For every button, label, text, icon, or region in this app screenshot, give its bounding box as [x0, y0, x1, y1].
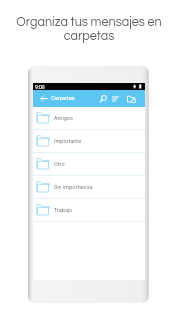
staticText: Trabajo: [54, 207, 73, 213]
staticText: Importante: [54, 138, 82, 144]
button[interactable]: Sort: [109, 90, 122, 107]
staticText: Sin importancia: [54, 184, 93, 190]
button[interactable]: Otro: [33, 153, 145, 176]
button[interactable]: Manage folders: [124, 90, 139, 107]
staticText: Amigos: [54, 115, 73, 121]
staticText: 9:00: [35, 84, 45, 90]
button[interactable]: Amigos: [33, 107, 145, 130]
button[interactable]: Importante: [33, 130, 145, 153]
button[interactable]: Back: [36, 90, 51, 107]
staticText: Carpetas: [51, 95, 75, 102]
button[interactable]: Sin importancia: [33, 176, 145, 199]
staticText: Organiza tus mensajes en carpetas: [14, 16, 164, 43]
button[interactable]: Search: [96, 90, 110, 107]
staticText: Otro: [54, 161, 65, 167]
button[interactable]: Trabajo: [33, 199, 145, 222]
